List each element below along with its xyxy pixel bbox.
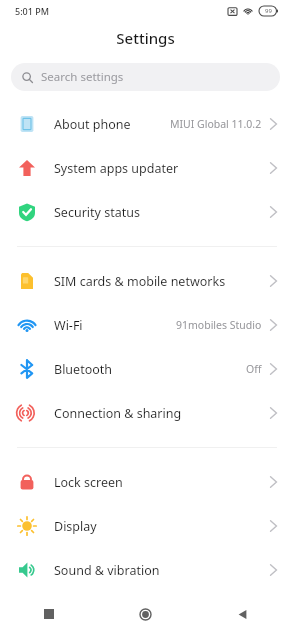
button[interactable]: Wi-Fi: [0, 303, 291, 347]
staticText: Wi-Fi: [54, 317, 176, 334]
button[interactable]: About phone: [0, 102, 291, 146]
button[interactable]: Connection & sharing: [0, 391, 291, 435]
button[interactable]: Display: [0, 504, 291, 548]
staticText: Sound & vibration: [54, 562, 270, 579]
staticText: MIUI Global 11.0.2: [170, 117, 262, 131]
staticText: Security status: [54, 204, 270, 221]
button[interactable]: Recents: [0, 598, 97, 630]
staticText: Bluetooth: [54, 361, 246, 378]
button[interactable]: SIM cards & mobile networks: [0, 259, 291, 303]
button[interactable]: Back: [194, 598, 291, 630]
staticText: System apps updater: [54, 160, 270, 177]
staticText: 99: [265, 7, 272, 15]
staticText: Display: [54, 518, 270, 535]
staticText: Off: [246, 362, 262, 376]
button[interactable]: Lock screen: [0, 460, 291, 504]
staticText: 5:01 PM: [15, 5, 49, 17]
button[interactable]: System apps updater: [0, 146, 291, 190]
staticText: Lock screen: [54, 474, 270, 491]
staticText: About phone: [54, 116, 170, 133]
button[interactable]: Sound & vibration: [0, 548, 291, 592]
staticText: Settings: [116, 28, 175, 48]
button[interactable]: Home: [97, 598, 194, 630]
button[interactable]: Security status: [0, 190, 291, 234]
button[interactable]: Bluetooth: [0, 347, 291, 391]
staticText: Search settings: [41, 69, 124, 85]
button[interactable]: Search settings: [11, 63, 280, 91]
staticText: Connection & sharing: [54, 405, 270, 422]
staticText: 91mobiles Studio: [176, 318, 262, 332]
staticText: SIM cards & mobile networks: [54, 273, 270, 290]
